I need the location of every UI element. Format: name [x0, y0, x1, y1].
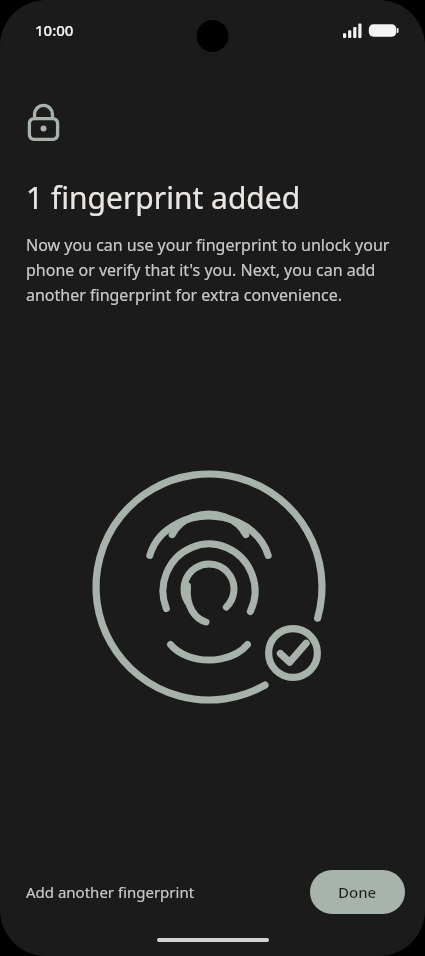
- button[interactable]: Done: [310, 870, 405, 914]
- button[interactable]: Add another fingerprint: [20, 872, 201, 912]
- staticText: Done: [338, 882, 377, 902]
- staticText: Add another fingerprint: [26, 882, 195, 902]
- staticText: 1 fingerprint added: [26, 177, 301, 218]
- staticText: Now you can use your fingerprint to unlo…: [26, 234, 399, 305]
- staticText: 10:00: [35, 20, 74, 40]
- other: Lock: [26, 101, 61, 141]
